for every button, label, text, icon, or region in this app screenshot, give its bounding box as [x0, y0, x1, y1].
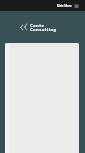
staticText: Conte Consulting	[30, 23, 57, 33]
button[interactable]: Open navigation menu	[74, 4, 79, 8]
staticText: Main Menu	[57, 4, 72, 8]
button[interactable]: Conte Consulting home	[19, 21, 46, 31]
button[interactable]: Main Menu	[56, 3, 73, 9]
